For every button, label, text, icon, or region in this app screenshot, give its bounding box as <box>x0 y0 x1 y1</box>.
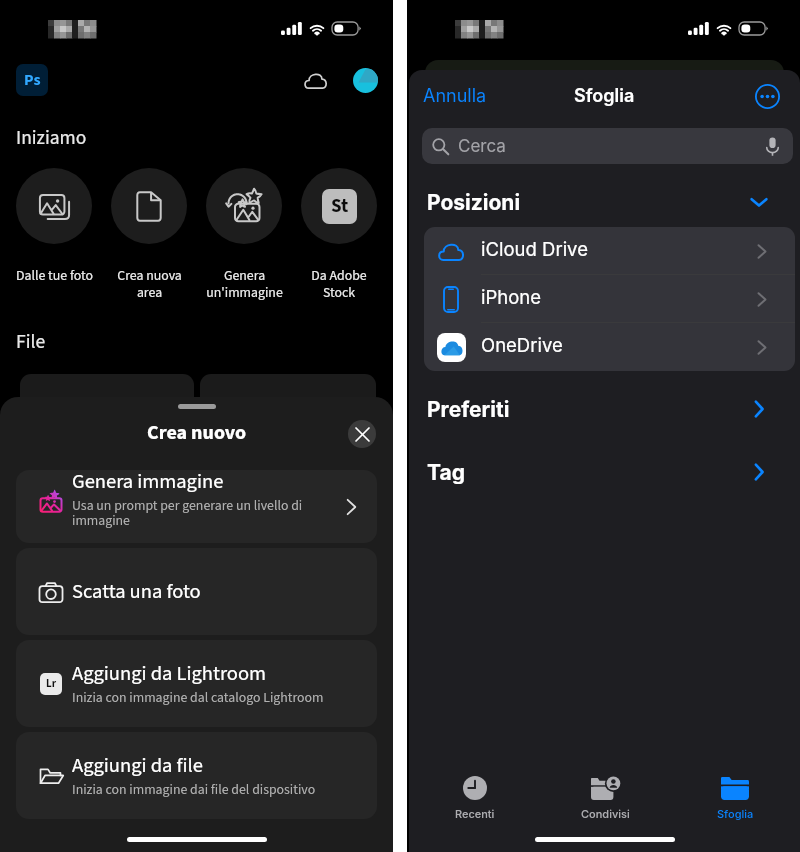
button[interactable]: Dalle tue foto <box>8 168 100 286</box>
staticText: Iniziamo <box>16 124 87 152</box>
staticText: Aggiungi da file <box>72 751 203 780</box>
button[interactable]: Condivisi <box>540 770 670 832</box>
button[interactable]: Preferiti <box>427 397 769 421</box>
button[interactable]: Sfoglia <box>670 770 800 832</box>
staticText: iPhone <box>481 286 542 308</box>
staticText: Crea nuova area <box>117 266 182 303</box>
staticText: Cerca <box>458 136 506 157</box>
staticText: Dalle tue foto <box>16 266 93 286</box>
button[interactable]: iPhone <box>424 275 795 323</box>
button[interactable]: Altro <box>754 83 780 109</box>
staticText: Usa un prompt per generare un livello di… <box>72 496 303 531</box>
staticText: Posizioni <box>427 190 521 214</box>
button[interactable]: Posizioni <box>427 190 769 214</box>
staticText: Ps <box>24 69 41 92</box>
button[interactable]: OneDrive <box>424 323 795 371</box>
button[interactable]: Lr <box>16 640 377 727</box>
button[interactable]: Annulla <box>423 85 487 107</box>
button[interactable]: Photoshop <box>16 64 48 96</box>
button[interactable]: Aggiungi da file <box>16 732 377 819</box>
button[interactable]: iCloud Drive <box>424 227 795 275</box>
staticText: St <box>331 193 349 220</box>
button[interactable]: St <box>293 168 385 303</box>
staticText: Aggiungi da Lightroom <box>72 659 267 688</box>
staticText: Lr <box>46 676 57 692</box>
staticText: Da Adobe Stock <box>311 266 367 303</box>
staticText: Genera immagine <box>72 470 224 496</box>
staticText: Scatta una foto <box>72 577 201 606</box>
button[interactable]: Recenti <box>409 770 540 832</box>
staticText: Genera un'immagine <box>206 266 283 303</box>
button[interactable]: Crea nuova area <box>103 168 195 303</box>
staticText: iCloud Drive <box>481 238 588 260</box>
staticText: OneDrive <box>481 334 563 356</box>
staticText: Inizia con immagine dal catalogo Lightro… <box>72 688 324 708</box>
button[interactable]: Scatta una foto <box>16 548 377 635</box>
button[interactable]: Cloud <box>301 66 329 94</box>
button[interactable]: Genera un'immagine <box>198 168 290 303</box>
staticText: Tag <box>427 460 465 484</box>
button[interactable]: Cerca <box>422 128 793 164</box>
staticText: Crea nuovo <box>147 419 247 447</box>
staticText: Inizia con immagine dai file del disposi… <box>72 780 316 800</box>
staticText: Condivisi <box>581 807 630 820</box>
button[interactable]: Tag <box>427 460 769 484</box>
button[interactable]: Chiudi <box>348 420 376 448</box>
staticText: File <box>16 328 46 356</box>
button[interactable]: Profilo <box>353 68 378 93</box>
staticText: Recenti <box>455 807 495 820</box>
staticText: Preferiti <box>427 397 510 421</box>
staticText: Sfoglia <box>717 807 754 820</box>
staticText: Sfoglia <box>574 85 635 107</box>
button[interactable]: Genera immagine <box>16 470 377 543</box>
